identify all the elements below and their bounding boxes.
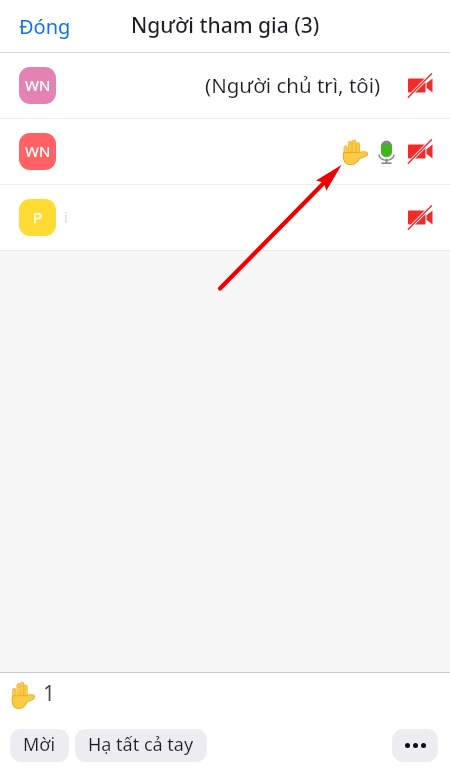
- staticText: Hạ tất cả tay: [88, 732, 194, 757]
- button[interactable]: More options: [392, 729, 438, 762]
- staticText: Người tham gia (3): [131, 11, 320, 40]
- button[interactable]: WN: [0, 119, 450, 184]
- staticText: P: [33, 207, 43, 227]
- staticText: 1: [43, 679, 56, 708]
- staticText: i: [64, 207, 68, 227]
- staticText: WN: [25, 141, 51, 161]
- staticText: (Người chủ trì, tôi): [205, 71, 381, 99]
- button[interactable]: P: [0, 185, 450, 250]
- button[interactable]: Đóng: [11, 7, 79, 46]
- staticText: WN: [25, 75, 51, 95]
- button[interactable]: Mời: [10, 729, 69, 762]
- staticText: Mời: [23, 732, 56, 757]
- staticText: Đóng: [19, 13, 71, 40]
- button[interactable]: Hạ tất cả tay: [75, 729, 207, 762]
- button[interactable]: WN: [0, 53, 450, 118]
